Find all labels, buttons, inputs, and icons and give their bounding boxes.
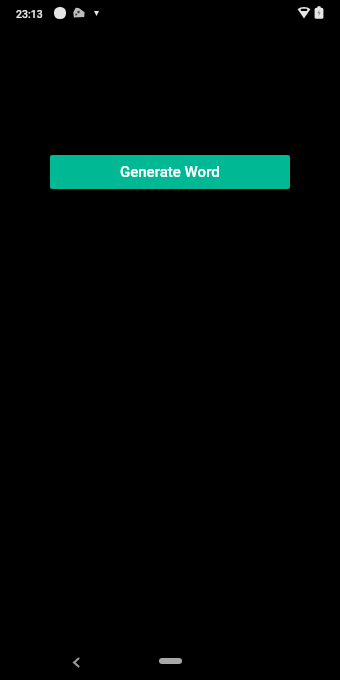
button[interactable]: Generate Word <box>50 155 290 189</box>
button[interactable]: Home <box>150 648 190 674</box>
staticText: Generate Word <box>120 163 220 181</box>
button[interactable]: Back <box>61 647 91 677</box>
staticText: 23:13 <box>16 8 43 20</box>
